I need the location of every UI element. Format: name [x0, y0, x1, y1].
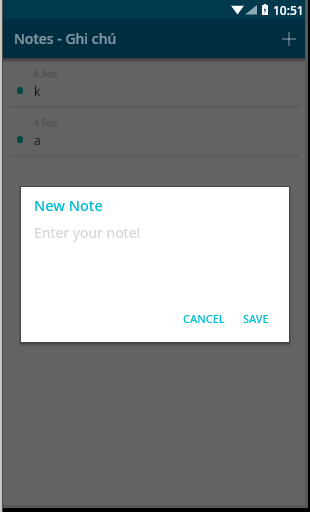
staticText: Enter your note!: [34, 223, 141, 242]
button[interactable]: Add note: [273, 23, 305, 55]
staticText: Notes - Ghi chú: [14, 29, 117, 48]
button[interactable]: 6 Sep: [3, 58, 305, 107]
staticText: k: [34, 83, 41, 99]
button[interactable]: SAVE: [235, 306, 277, 331]
staticText: CANCEL: [183, 311, 225, 326]
staticText: New Note: [34, 195, 103, 215]
staticText: SAVE: [243, 311, 269, 326]
button[interactable]: 4 Sep: [3, 107, 305, 156]
button[interactable]: CANCEL: [175, 306, 233, 331]
staticText: 6 Sep: [34, 67, 58, 79]
staticText: 4 Sep: [34, 116, 58, 128]
staticText: a: [34, 132, 41, 148]
staticText: 10:51: [273, 2, 304, 18]
